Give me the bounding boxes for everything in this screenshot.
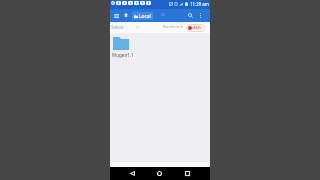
staticText: Local bbox=[139, 13, 151, 20]
staticText: 11:29 am bbox=[190, 1, 209, 7]
button[interactable]: Navigation menu bbox=[111, 9, 122, 22]
button[interactable]: Home bbox=[153, 167, 166, 180]
button[interactable]: Mugen1.1 bbox=[112, 36, 136, 58]
button[interactable]: Grid view bbox=[133, 23, 141, 31]
button[interactable]: Recent apps bbox=[181, 167, 194, 180]
staticText: ADS bbox=[193, 25, 202, 31]
button[interactable]: Select bbox=[110, 24, 125, 30]
staticText: Select bbox=[111, 24, 124, 30]
button[interactable]: Search bbox=[185, 9, 196, 22]
button[interactable]: Bookmark bbox=[162, 24, 185, 30]
staticText: Bookmark bbox=[163, 24, 184, 30]
button[interactable]: ADS bbox=[186, 24, 205, 32]
button[interactable]: More options bbox=[196, 9, 205, 22]
staticText: Mugen1.1 bbox=[112, 52, 134, 58]
button[interactable]: Local bbox=[132, 12, 153, 20]
button[interactable]: Back bbox=[126, 167, 139, 180]
